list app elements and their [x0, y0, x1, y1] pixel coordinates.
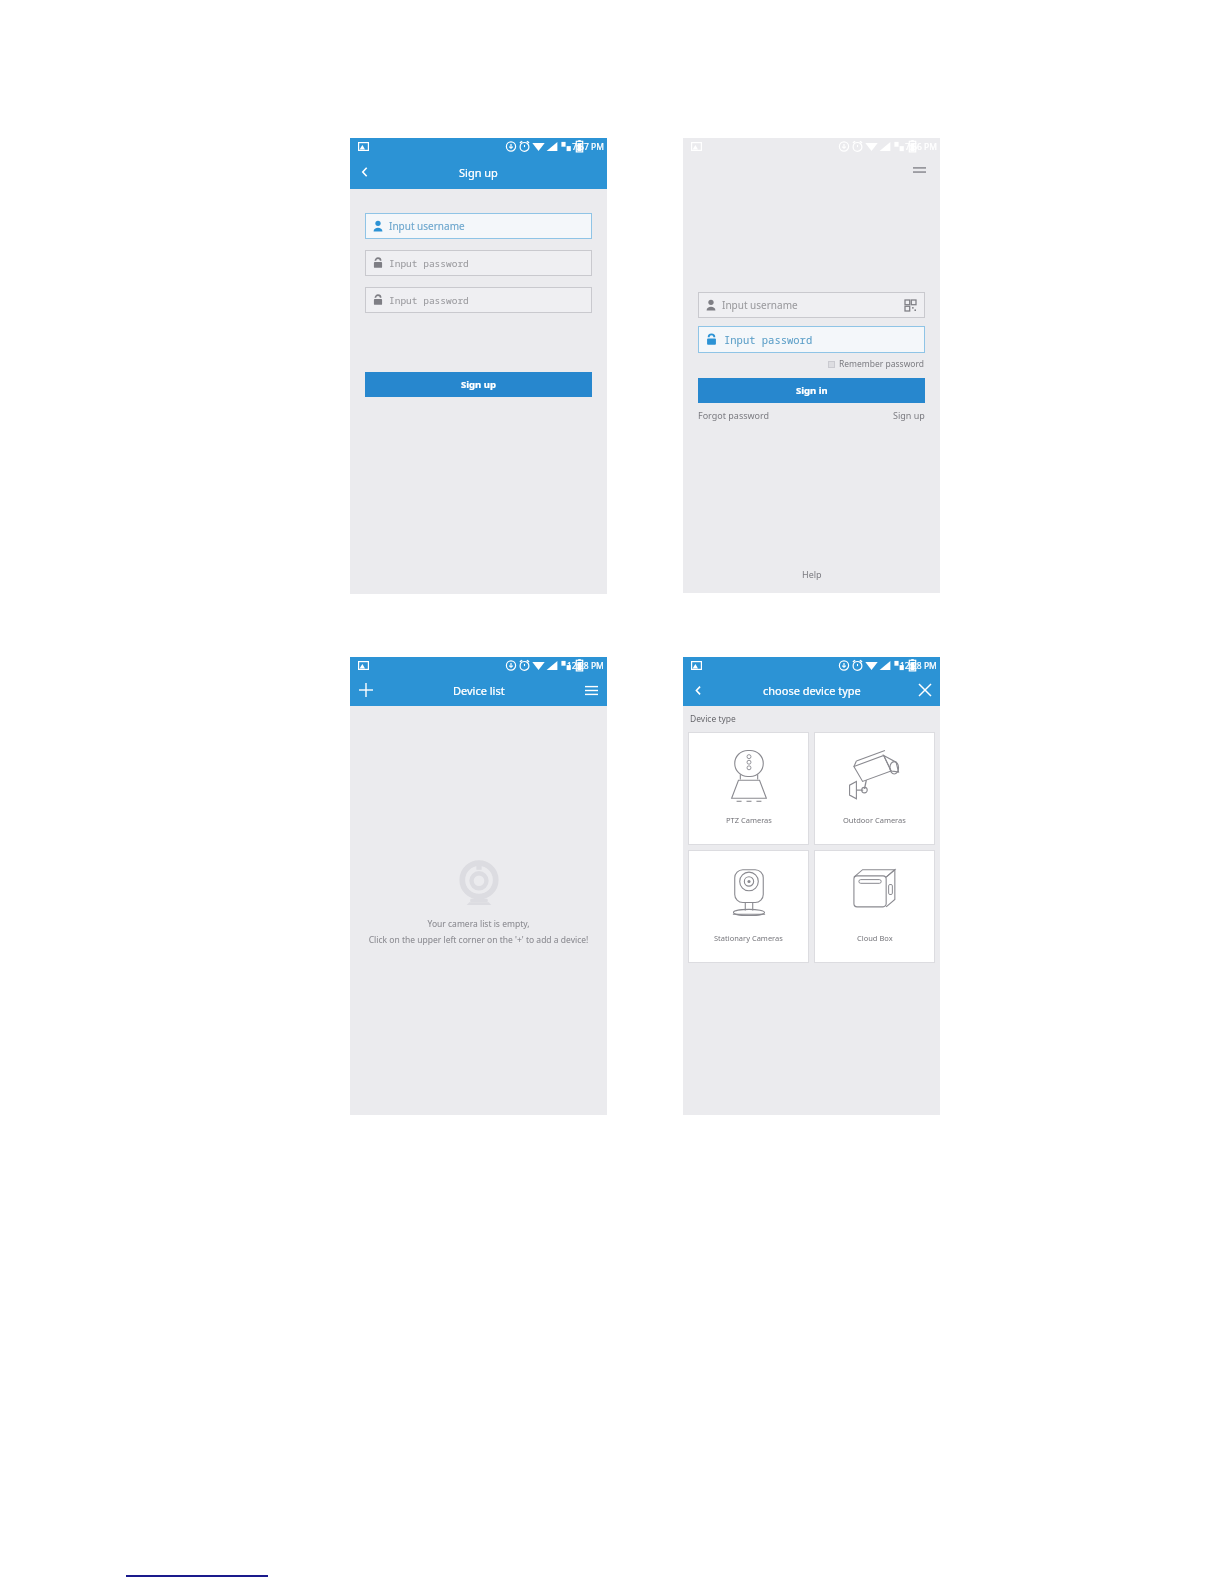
button[interactable]: Back	[350, 155, 380, 189]
button[interactable]: Sign up	[365, 372, 592, 397]
button[interactable]: Scan QR code	[901, 296, 919, 314]
staticText: Device type	[690, 713, 736, 725]
button[interactable]: Remember password	[683, 358, 925, 370]
button[interactable]: Sign up	[893, 409, 925, 421]
staticText: Click on the upper left corner on the '+…	[350, 934, 607, 946]
button[interactable]: Add device	[350, 674, 382, 706]
staticText: Device list	[453, 683, 505, 698]
button[interactable]: Sign in	[698, 378, 925, 403]
staticText: Input password	[389, 257, 469, 270]
button[interactable]: PTZ Cameras	[688, 732, 809, 845]
button[interactable]: Input password	[365, 287, 592, 313]
button[interactable]: Input username	[698, 292, 925, 318]
staticText: 7:56 PM	[905, 141, 937, 153]
staticText: Cloud Box	[857, 933, 893, 943]
staticText: Sign up	[461, 378, 496, 391]
staticText: choose device type	[763, 683, 861, 698]
staticText: Input username	[722, 298, 901, 312]
staticText: Input password	[389, 294, 469, 307]
button[interactable]: Menu	[575, 674, 607, 706]
button[interactable]: Input username	[365, 213, 592, 239]
staticText: Remember password	[839, 358, 925, 370]
button[interactable]: Input password	[698, 326, 925, 353]
button[interactable]: Input password	[365, 250, 592, 276]
staticText: PTZ Cameras	[726, 815, 772, 825]
button[interactable]: Stationary Cameras	[688, 850, 809, 963]
staticText: Your camera list is empty,	[350, 918, 607, 930]
staticText: Outdoor Cameras	[843, 815, 906, 825]
staticText: Stationary Cameras	[714, 933, 783, 943]
button[interactable]: Menu	[909, 160, 929, 180]
button[interactable]: Help	[802, 568, 822, 580]
staticText: 12:28 PM	[567, 660, 604, 672]
button[interactable]: Back	[683, 674, 713, 706]
staticText: Input username	[389, 219, 465, 233]
button[interactable]: Close	[910, 674, 940, 706]
button[interactable]: Forgot password	[698, 409, 770, 421]
staticText: Sign up	[459, 165, 498, 180]
staticText: 12:28 PM	[900, 660, 937, 672]
button[interactable]: Cloud Box	[814, 850, 935, 963]
staticText: Sign in	[796, 384, 828, 397]
staticText: 7:57 PM	[572, 141, 604, 153]
staticText: Input password	[724, 333, 813, 347]
button[interactable]: Outdoor Cameras	[814, 732, 935, 845]
